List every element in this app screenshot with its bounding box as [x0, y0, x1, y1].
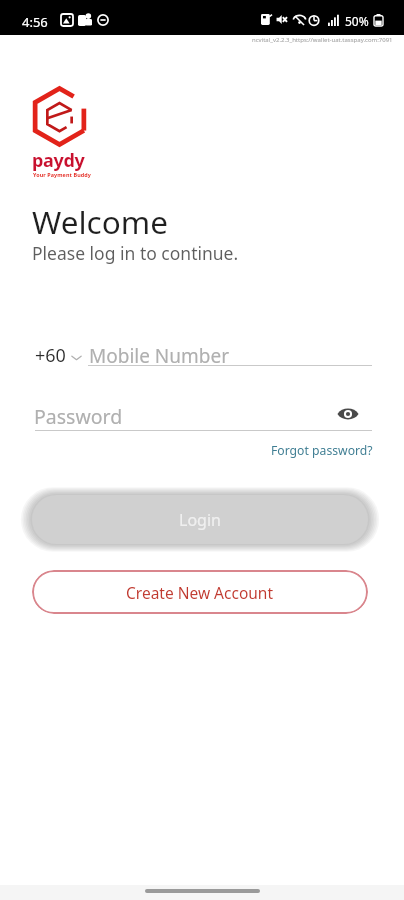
staticText: Your Payment Buddy	[33, 171, 91, 178]
button[interactable]: Create New Account	[32, 570, 368, 614]
button[interactable]: Forgot password?	[271, 442, 373, 459]
staticText: 4:56	[22, 13, 48, 31]
staticText: +60	[35, 343, 66, 368]
staticText: Password	[34, 403, 123, 430]
staticText: 50%	[345, 13, 369, 29]
button[interactable]: +60	[35, 343, 82, 368]
staticText: Create New Account	[126, 582, 274, 603]
staticText: Login	[179, 509, 221, 531]
button[interactable]: Show password	[334, 400, 362, 428]
staticText: Welcome	[32, 200, 168, 243]
staticText: Mobile Number	[89, 343, 230, 369]
button[interactable]: Login	[32, 495, 368, 544]
staticText: Please log in to continue.	[32, 241, 239, 265]
staticText: ncvital_v2.2.3_https://wallet-uat.tasspa…	[252, 36, 393, 44]
staticText: paydy	[32, 148, 85, 173]
